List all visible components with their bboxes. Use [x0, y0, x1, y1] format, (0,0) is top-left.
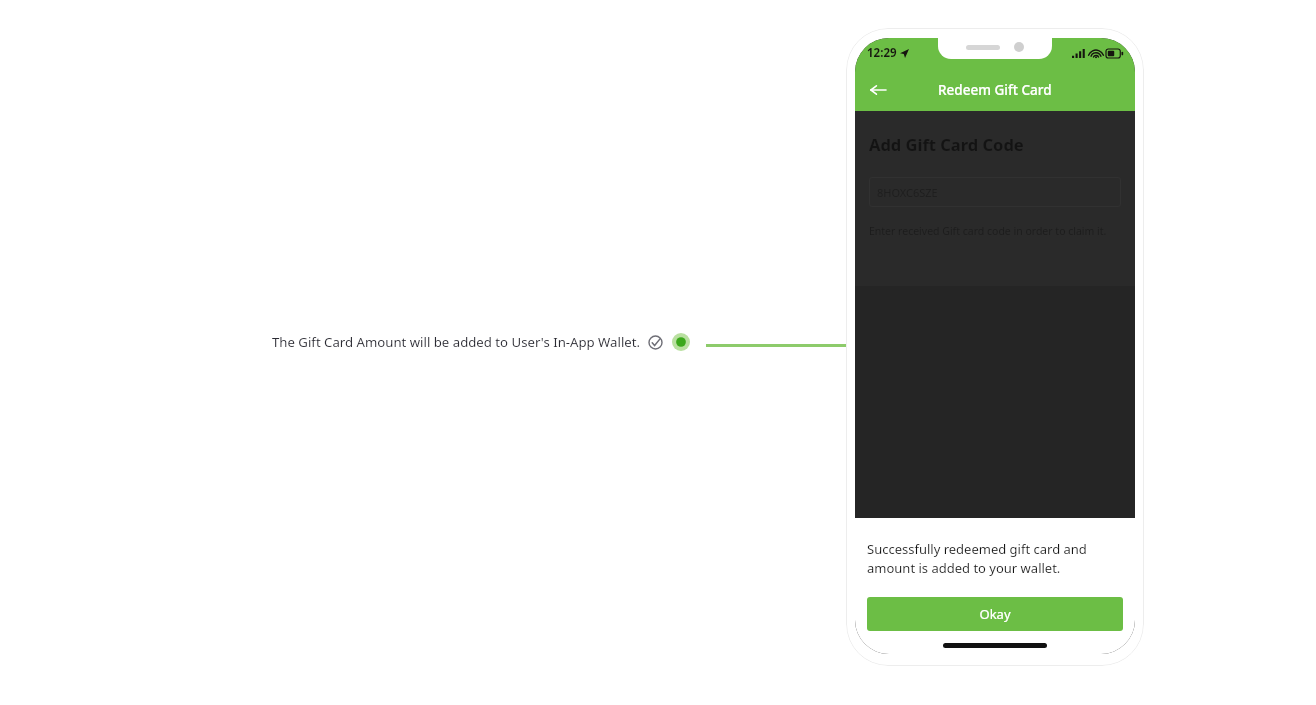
- staticText: Add Gift Card Code: [869, 133, 1024, 155]
- staticText: Successfully redeemed gift card and amou…: [867, 540, 1123, 577]
- button[interactable]: The Gift Card Amount will be added to Us…: [272, 333, 690, 351]
- other: Verified: [648, 335, 663, 350]
- staticText: 12:29: [867, 45, 897, 61]
- button[interactable]: Okay: [867, 597, 1123, 631]
- staticText: The Gift Card Amount will be added to Us…: [272, 333, 641, 351]
- staticText: 8HOXC6SZE: [877, 185, 938, 200]
- staticText: Redeem Gift Card: [938, 81, 1052, 99]
- staticText: Okay: [979, 605, 1011, 623]
- button[interactable]: Back: [863, 75, 893, 105]
- staticText: Enter received Gift card code in order t…: [869, 224, 1107, 238]
